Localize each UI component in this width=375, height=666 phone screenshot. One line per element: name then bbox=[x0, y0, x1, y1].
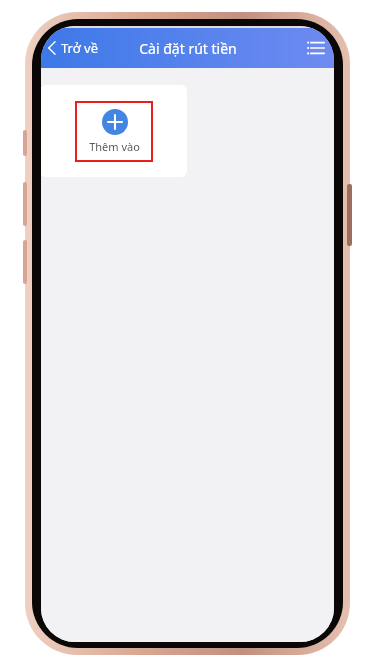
staticText: Thêm vào bbox=[89, 139, 140, 154]
staticText: Trở về bbox=[61, 39, 99, 57]
button[interactable]: Thêm vào bbox=[41, 85, 187, 177]
staticText: Cài đặt rút tiền bbox=[139, 39, 237, 58]
button[interactable]: Menu bbox=[297, 32, 334, 64]
button[interactable]: Trở về bbox=[41, 32, 109, 64]
